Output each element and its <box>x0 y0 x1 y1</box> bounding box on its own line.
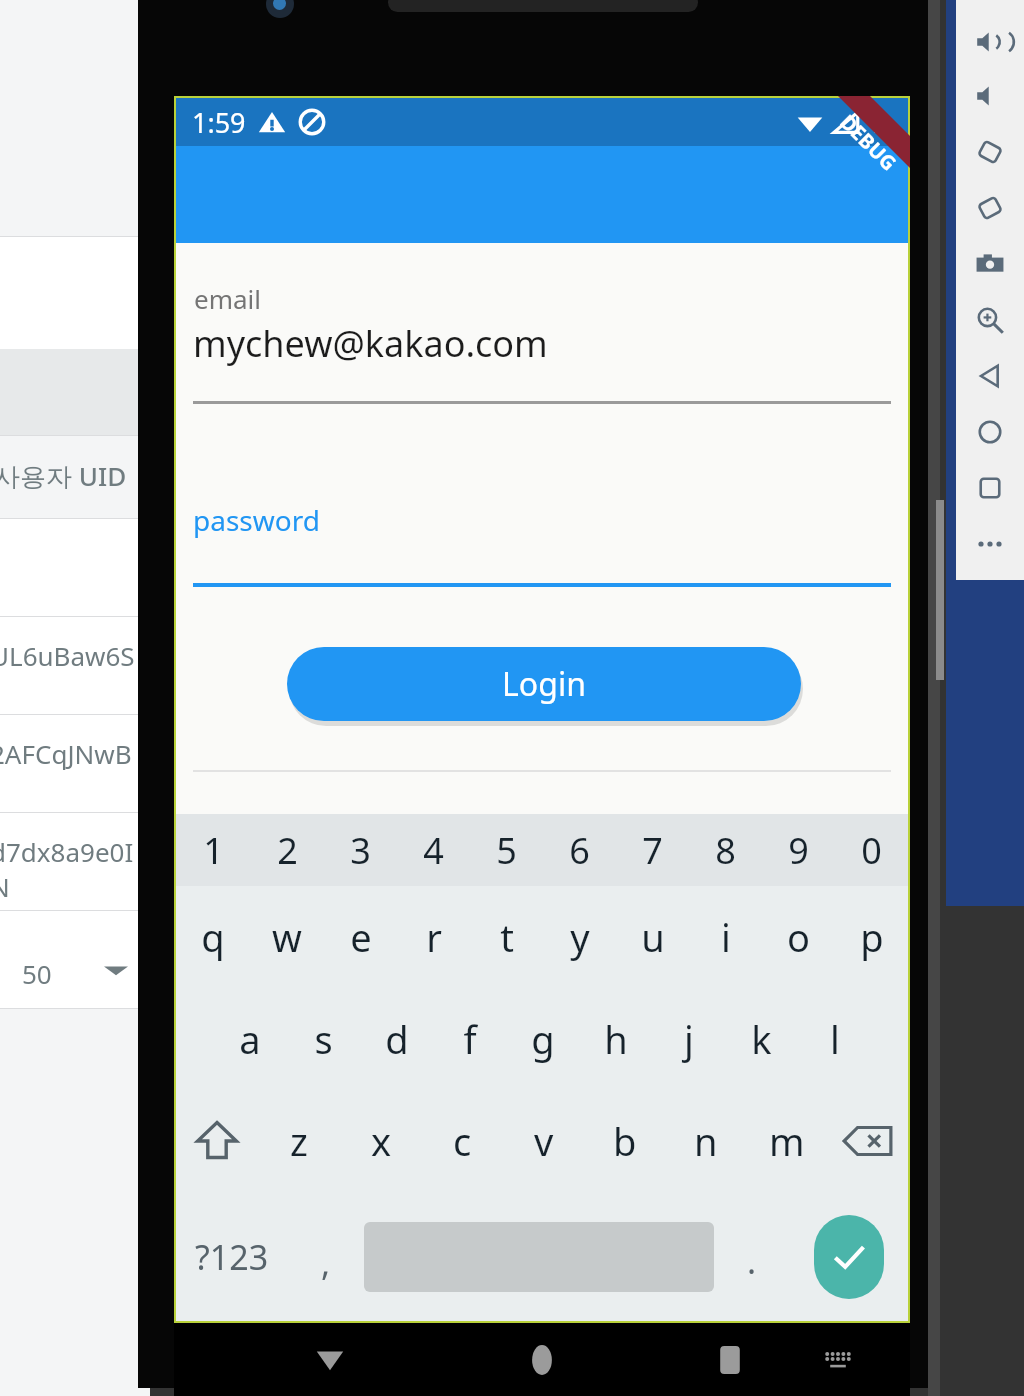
button[interactable]: w <box>250 886 324 988</box>
staticText: k <box>751 1013 772 1065</box>
staticText: v <box>534 1115 554 1167</box>
staticText: 0 <box>861 826 882 875</box>
button[interactable]: Keyboard <box>810 1332 866 1388</box>
staticText: x <box>371 1115 392 1167</box>
staticText: 9 <box>788 826 809 875</box>
staticText: q <box>201 911 225 963</box>
button[interactable]: , <box>288 1192 364 1321</box>
button[interactable]: m <box>746 1090 827 1192</box>
button[interactable]: 6 <box>543 814 616 886</box>
staticText: DEBUG <box>835 109 902 176</box>
staticText: 사용자 UID <box>0 458 127 494</box>
staticText: . <box>747 1238 757 1284</box>
button[interactable]: 1 <box>176 814 250 886</box>
staticText: 4 <box>423 826 444 875</box>
staticText: 2AFCqJNwB <box>0 736 132 771</box>
staticText: email <box>194 281 261 316</box>
staticText: mychew@kakao.com <box>193 319 548 368</box>
button[interactable]: 0 <box>835 814 908 886</box>
button[interactable]: Backspace <box>827 1090 908 1192</box>
button[interactable]: y <box>543 886 616 988</box>
staticText: s <box>314 1013 333 1065</box>
button[interactable]: l <box>798 988 871 1090</box>
button[interactable]: i <box>689 886 762 988</box>
button[interactable]: s <box>287 988 360 1090</box>
staticText: ?123 <box>195 1234 269 1280</box>
staticText: 6 <box>569 826 590 875</box>
staticText: UL6uBaw6S1 <box>0 638 140 708</box>
staticText: 8 <box>715 826 736 875</box>
button[interactable]: q <box>176 886 250 988</box>
staticText: 3 <box>350 826 371 875</box>
button[interactable]: 3 <box>324 814 397 886</box>
button[interactable]: Recents <box>702 1332 758 1388</box>
button[interactable]: a <box>213 988 287 1090</box>
staticText: 7 <box>642 826 663 875</box>
staticText: i <box>721 911 731 963</box>
button[interactable]: r <box>397 886 470 988</box>
staticText: d <box>385 1013 409 1065</box>
button[interactable]: ?123 <box>176 1192 288 1321</box>
button[interactable]: 9 <box>762 814 835 886</box>
staticText: r <box>426 911 442 963</box>
button[interactable]: Shift <box>176 1090 258 1192</box>
button[interactable]: n <box>665 1090 746 1192</box>
staticText: l <box>830 1013 840 1065</box>
button[interactable]: Done <box>814 1215 884 1299</box>
staticText: p <box>860 911 884 963</box>
staticText: b <box>613 1115 637 1167</box>
button[interactable]: v <box>503 1090 584 1192</box>
button[interactable]: o <box>762 886 835 988</box>
button[interactable]: Login <box>287 647 801 721</box>
button[interactable]: p <box>835 886 908 988</box>
button[interactable]: z <box>258 1090 340 1192</box>
staticText: w <box>272 911 302 963</box>
button[interactable]: . <box>714 1192 790 1321</box>
button[interactable]: 7 <box>616 814 689 886</box>
button[interactable]: h <box>579 988 652 1090</box>
staticText: f <box>463 1013 477 1065</box>
staticText: , <box>321 1240 331 1286</box>
staticText: 5 <box>496 826 517 875</box>
button[interactable]: Home <box>514 1332 570 1388</box>
staticText: 50 <box>22 956 52 991</box>
button[interactable]: g <box>506 988 579 1090</box>
staticText: Login <box>502 662 586 706</box>
staticText: o <box>787 911 810 963</box>
staticText: Regist by email <box>424 817 660 859</box>
staticText: a <box>239 1013 261 1065</box>
button[interactable]: t <box>470 886 543 988</box>
button[interactable]: d <box>360 988 433 1090</box>
staticText: j <box>684 1013 694 1065</box>
staticText: t <box>500 911 514 963</box>
button[interactable]: 5 <box>470 814 543 886</box>
button[interactable]: c <box>422 1090 503 1192</box>
staticText: d7dx8a9e0IN <box>0 834 140 904</box>
button[interactable]: Back <box>302 1332 358 1388</box>
staticText: m <box>769 1115 805 1167</box>
staticText: 1 <box>203 826 224 875</box>
staticText: u <box>641 911 665 963</box>
button[interactable]: 8 <box>689 814 762 886</box>
button[interactable]: u <box>616 886 689 988</box>
button[interactable]: Regist by email <box>193 783 891 893</box>
button[interactable]: x <box>340 1090 422 1192</box>
staticText: 1:59 <box>192 104 246 141</box>
button[interactable]: e <box>324 886 397 988</box>
button[interactable]: k <box>725 988 798 1090</box>
staticText: h <box>604 1013 628 1065</box>
staticText: n <box>694 1115 718 1167</box>
staticText: y <box>570 911 590 963</box>
button[interactable]: j <box>652 988 725 1090</box>
button[interactable]: 2 <box>250 814 324 886</box>
button[interactable]: 4 <box>397 814 470 886</box>
staticText: z <box>290 1115 308 1167</box>
button[interactable]: b <box>584 1090 665 1192</box>
staticText: c <box>453 1115 472 1167</box>
staticText: 2 <box>277 826 298 875</box>
button[interactable]: f <box>433 988 506 1090</box>
staticText: password <box>193 501 320 539</box>
staticText: g <box>531 1013 555 1065</box>
staticText: e <box>350 911 372 963</box>
